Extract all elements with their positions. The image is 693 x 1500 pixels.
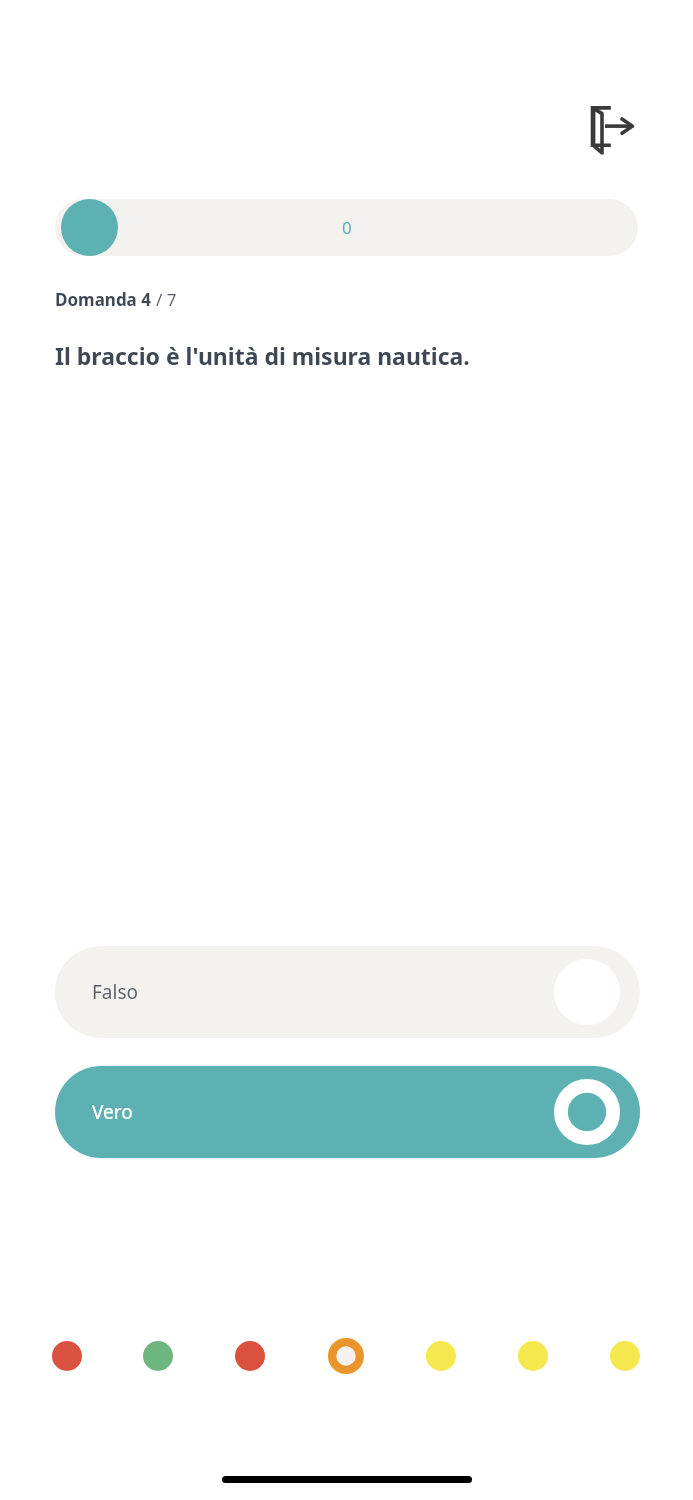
button[interactable]: Domanda 6: [518, 1341, 548, 1371]
button[interactable]: Domanda 1: [52, 1341, 82, 1371]
button[interactable]: Falso: [55, 946, 640, 1038]
button[interactable]: Domanda 7: [610, 1341, 640, 1371]
staticText: Falso: [92, 979, 139, 1005]
button[interactable]: Domanda 3: [235, 1341, 265, 1371]
button[interactable]: Domanda 5: [426, 1341, 456, 1371]
button[interactable]: Domanda 2: [143, 1341, 173, 1371]
staticText: Vero: [92, 1099, 133, 1125]
button[interactable]: Vero: [55, 1066, 640, 1158]
staticText: Domanda 4: [55, 288, 151, 311]
button[interactable]: Esci: [578, 98, 640, 160]
button[interactable]: Domanda 4: [328, 1338, 364, 1374]
button[interactable]: 0: [55, 199, 638, 256]
staticText: / 7: [156, 288, 177, 311]
staticText: 0: [342, 216, 352, 239]
staticText: Il braccio è l'unità di misura nautica.: [55, 340, 470, 371]
